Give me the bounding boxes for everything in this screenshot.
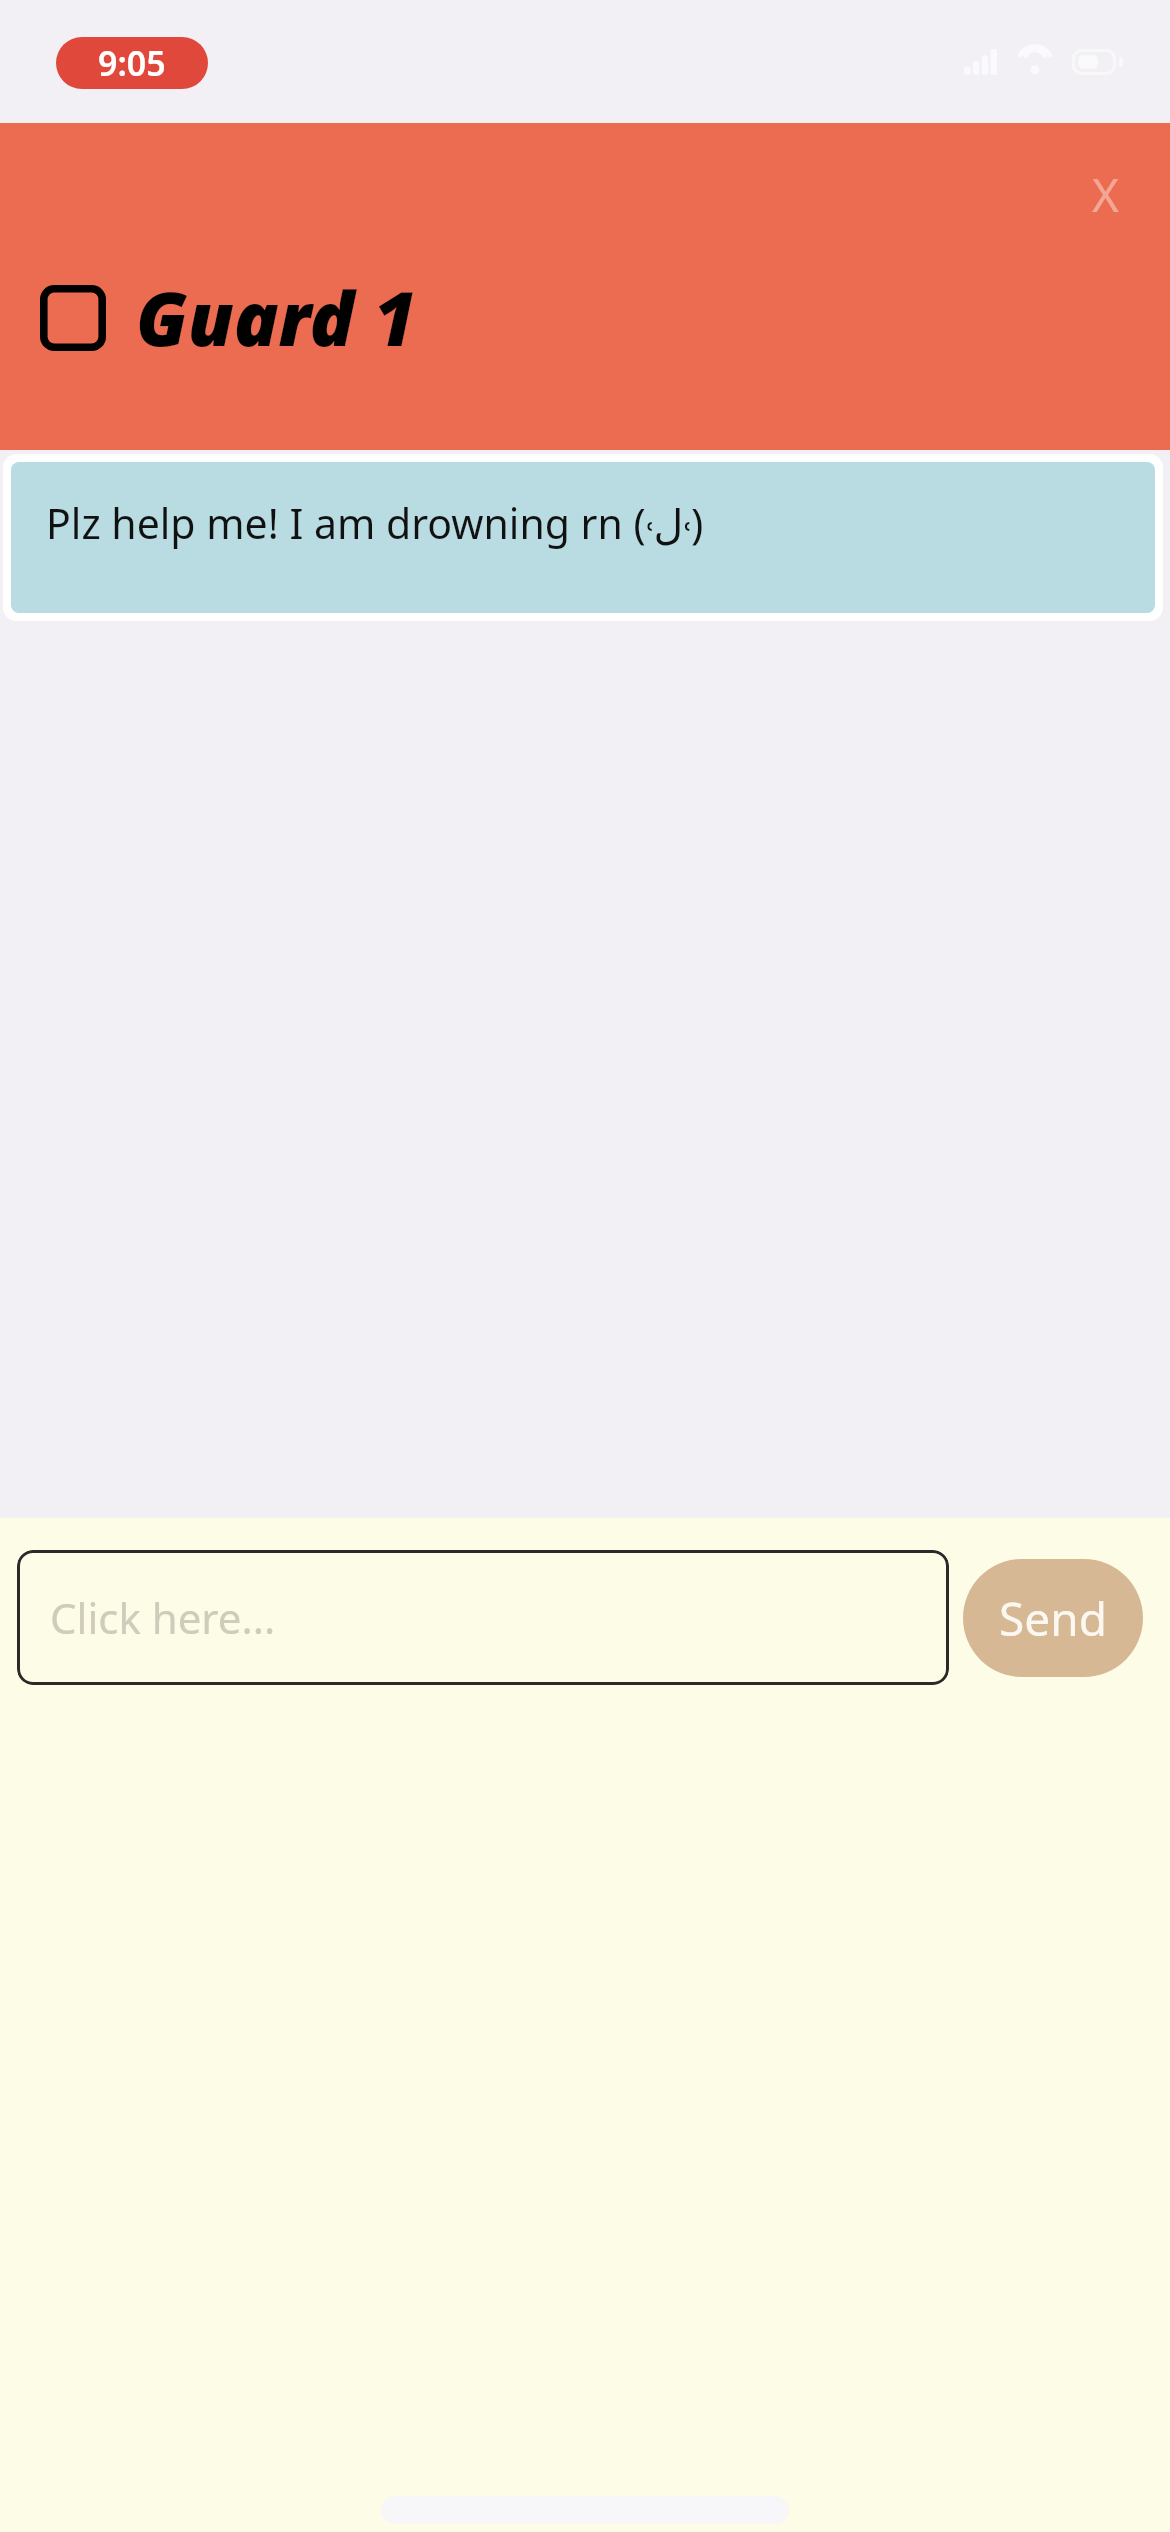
staticText: Guard 1	[136, 267, 417, 368]
staticText: X	[1092, 163, 1119, 226]
staticText: 9:05	[98, 40, 166, 86]
staticText: Click here...	[50, 1589, 276, 1646]
button[interactable]: Close	[1062, 151, 1148, 237]
button[interactable]: Click here...	[17, 1550, 949, 1685]
staticText: Send	[999, 1587, 1107, 1650]
button[interactable]: Send	[963, 1559, 1143, 1677]
button[interactable]: Plz help me! I am drowning rn (˓ل˓)	[11, 462, 1155, 613]
staticText: Plz help me! I am drowning rn (˓ل˓)	[46, 495, 704, 551]
button[interactable]: Guard 1	[40, 267, 417, 368]
